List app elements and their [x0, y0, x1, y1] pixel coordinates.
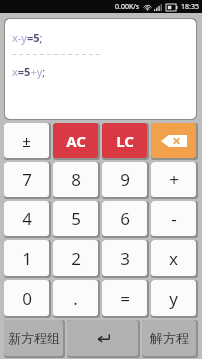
button[interactable]: 解方程 [142, 320, 196, 356]
button[interactable]: LC [102, 123, 147, 158]
staticText: ± [22, 131, 31, 151]
staticText: 2 [71, 247, 81, 270]
staticText: 0 [22, 287, 32, 310]
staticText: x [169, 247, 178, 270]
button[interactable]: x [151, 240, 196, 276]
button[interactable]: 8 [53, 162, 98, 197]
staticText: 新方程组 [8, 330, 60, 346]
button[interactable]: 5 [53, 201, 98, 236]
button[interactable]: Backspace [151, 123, 196, 158]
button[interactable]: Enter [67, 320, 138, 356]
staticText: 0.00K/s [115, 2, 140, 12]
button[interactable]: y [151, 280, 196, 316]
button[interactable]: 9 [102, 162, 147, 197]
button[interactable]: ± [4, 123, 49, 158]
button[interactable]: 2 [53, 240, 98, 276]
staticText: + [169, 168, 179, 191]
button[interactable]: . [53, 280, 98, 316]
button[interactable]: AC [53, 123, 98, 158]
staticText: x=5+y; [12, 64, 46, 79]
button[interactable]: - [151, 201, 196, 236]
button[interactable]: 4 [4, 201, 49, 236]
staticText: AC [66, 131, 86, 151]
staticText: 6 [120, 207, 130, 230]
staticText: 解方程 [150, 330, 189, 346]
staticText: = [120, 287, 130, 310]
staticText: . [73, 287, 78, 310]
staticText: 9 [120, 168, 130, 191]
staticText: 4 [22, 207, 32, 230]
staticText: - [171, 207, 177, 230]
staticText: x-y=5; [12, 30, 43, 45]
staticText: 8 [71, 168, 81, 191]
button[interactable]: = [102, 280, 147, 316]
button[interactable]: 0 [4, 280, 49, 316]
staticText: 7 [22, 168, 32, 191]
staticText: 18:35 [181, 2, 199, 12]
staticText: 1 [22, 247, 32, 270]
button[interactable]: 3 [102, 240, 147, 276]
button[interactable]: 新方程组 [4, 320, 63, 356]
button[interactable]: + [151, 162, 196, 197]
staticText: LC [116, 131, 134, 151]
staticText: 3 [120, 247, 130, 270]
button[interactable]: 7 [4, 162, 49, 197]
staticText: 5 [71, 207, 81, 230]
button[interactable]: 1 [4, 240, 49, 276]
button[interactable]: 6 [102, 201, 147, 236]
staticText: y [169, 287, 178, 310]
